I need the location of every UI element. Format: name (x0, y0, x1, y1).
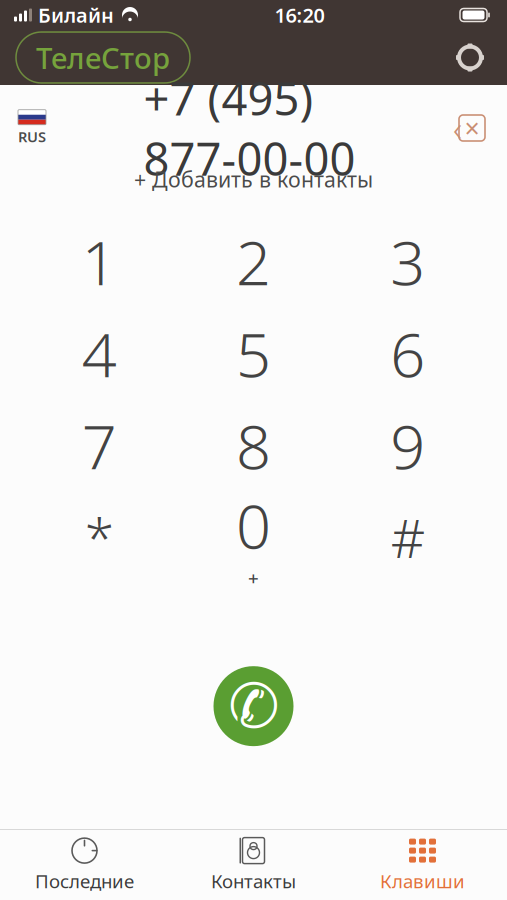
staticText: # (391, 502, 425, 573)
button[interactable]: 5 (176, 307, 331, 399)
staticText: ✆ (228, 671, 279, 741)
button[interactable]: 9 (331, 399, 485, 491)
button[interactable]: Позвонить (210, 663, 296, 749)
staticText: 1 (82, 221, 117, 302)
button[interactable]: # (331, 491, 485, 583)
button[interactable]: 3 (331, 215, 485, 307)
button[interactable]: 6 (331, 307, 485, 399)
staticText: 7 (82, 405, 117, 486)
staticText: +7 (495) 877-00-00 (143, 68, 355, 188)
staticText: × (464, 110, 479, 146)
staticText: 8 (236, 405, 271, 486)
staticText: 0 (236, 484, 271, 566)
staticText: 3 (390, 221, 425, 302)
button[interactable]: ТелеСтор (16, 32, 190, 83)
button[interactable]: 4 (22, 307, 176, 399)
button[interactable]: 8 (176, 399, 331, 491)
staticText: 2 (236, 221, 271, 302)
button[interactable]: Контакты (169, 830, 338, 900)
staticText: 9 (390, 405, 425, 486)
staticText: + (248, 566, 259, 590)
staticText: + Добавить в контакты (134, 165, 373, 193)
staticText: ‹ (453, 105, 462, 151)
button[interactable]: 2 (176, 215, 331, 307)
button[interactable]: Клавиши (338, 830, 507, 900)
staticText: 4 (82, 313, 117, 394)
button[interactable]: Настройки (453, 40, 487, 74)
staticText: Последние (35, 869, 134, 893)
staticText: Клавиши (380, 869, 465, 893)
button[interactable]: Последние (0, 830, 169, 900)
button[interactable]: 0 (176, 491, 331, 583)
staticText: Контакты (211, 869, 296, 893)
staticText: 6 (390, 313, 425, 394)
staticText: 5 (236, 313, 271, 394)
staticText: ТелеСтор (36, 38, 170, 77)
button[interactable]: * (22, 491, 176, 583)
button[interactable]: 7 (22, 399, 176, 491)
staticText: 16:20 (274, 2, 324, 28)
button[interactable]: Удалить (453, 113, 507, 143)
staticText: * (85, 502, 114, 573)
button[interactable]: + Добавить в контакты (124, 161, 383, 197)
button[interactable]: 1 (22, 215, 176, 307)
staticText: RUS (18, 127, 46, 146)
staticText: Билайн (38, 2, 114, 28)
